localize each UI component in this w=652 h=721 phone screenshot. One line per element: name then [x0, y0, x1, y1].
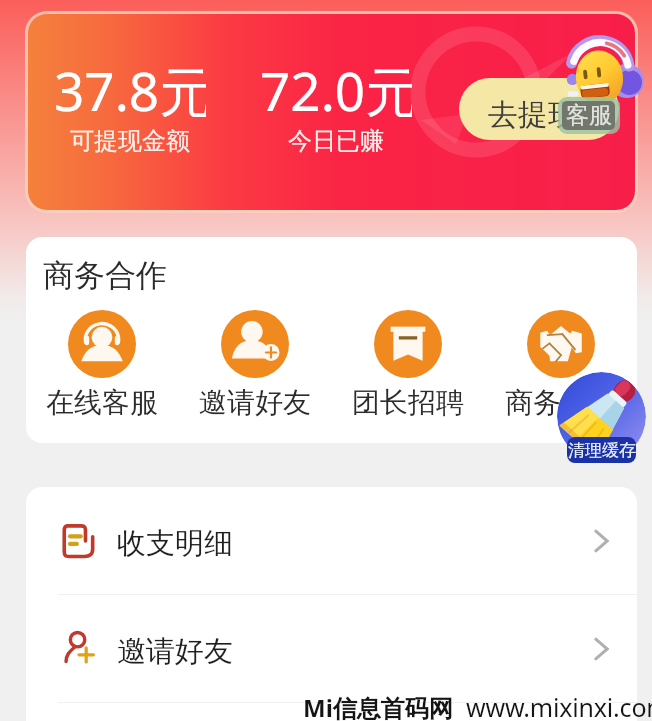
button[interactable]: 客服: [566, 38, 642, 114]
button[interactable]: 清理缓存: [557, 372, 646, 461]
staticText: Mi信息首码网: [303, 691, 453, 721]
button[interactable]: 在线客服: [26, 310, 178, 420]
staticText: 在线客服: [46, 385, 158, 420]
button[interactable]: 清理缓存: [567, 437, 636, 463]
button[interactable]: 邀请好友: [178, 310, 331, 420]
staticText: 37.8元: [54, 54, 206, 126]
staticText: 72.0元: [260, 54, 412, 126]
staticText: 客服: [566, 101, 612, 130]
button[interactable]: 客服: [562, 101, 615, 130]
button[interactable]: 团长招聘: [331, 310, 484, 420]
staticText: www.mixinxi.com: [466, 690, 652, 721]
staticText: 邀请好友: [199, 385, 311, 420]
staticText: 清理缓存: [568, 440, 636, 461]
staticText: 商务合作: [43, 256, 167, 295]
staticText: 去提现: [488, 96, 578, 134]
staticText: 收支明细: [117, 525, 233, 562]
button[interactable]: 商务合作: [484, 310, 637, 420]
staticText: 可提现金额: [70, 126, 190, 156]
staticText: 邀请好友: [117, 633, 233, 670]
staticText: 今日已赚: [288, 126, 384, 156]
staticText: 商务合作: [505, 385, 617, 420]
staticText: 团长招聘: [352, 385, 464, 420]
button[interactable]: 收支明细: [26, 487, 637, 594]
button[interactable]: 邀请好友: [26, 595, 637, 702]
button[interactable]: 去提现: [459, 78, 619, 140]
